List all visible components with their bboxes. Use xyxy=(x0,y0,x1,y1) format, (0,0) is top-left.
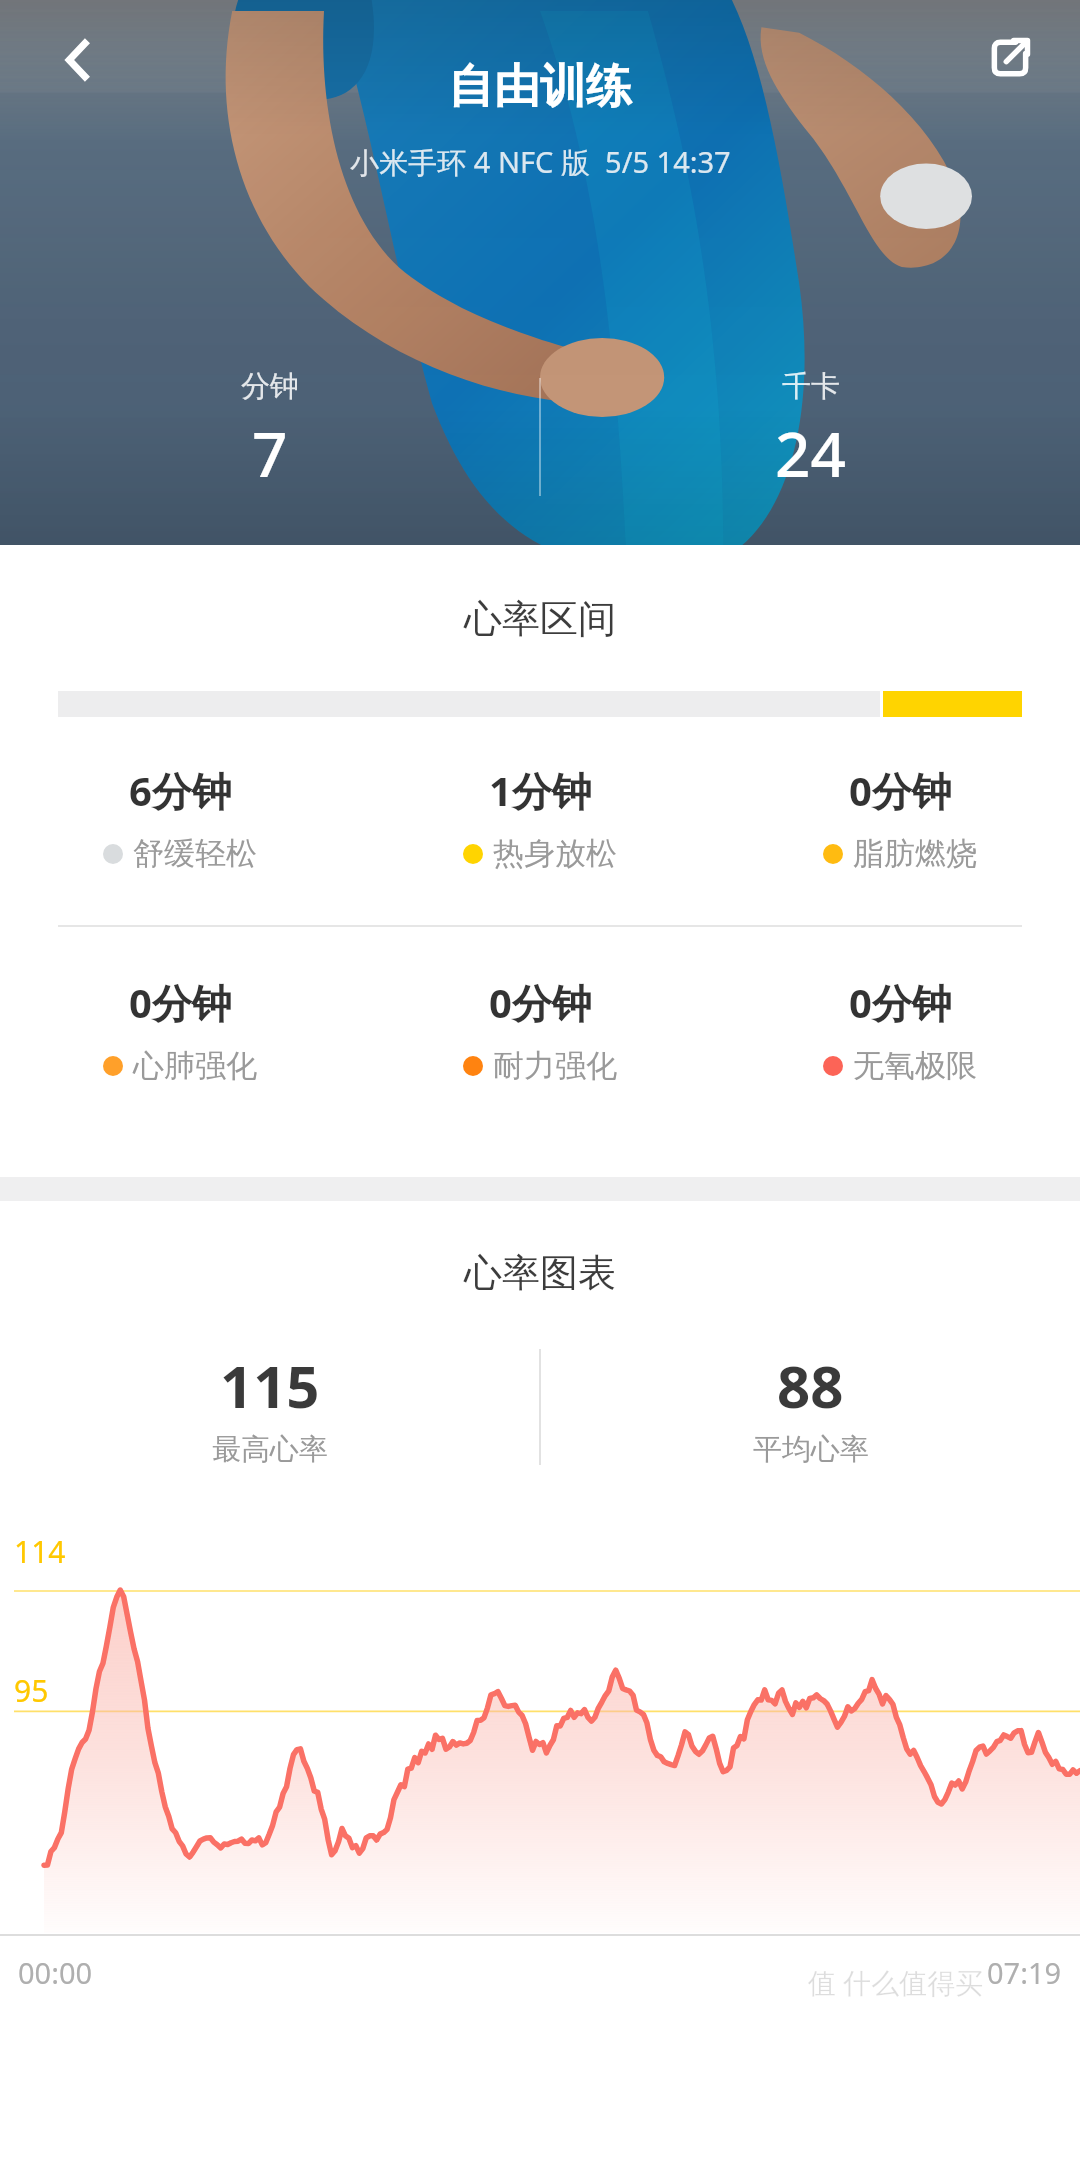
button[interactable]: 0分钟 xyxy=(720,763,1080,873)
staticText: 脂肪燃烧 xyxy=(853,834,977,873)
staticText: 舒缓轻松 xyxy=(133,834,257,873)
staticText: 0分钟 xyxy=(489,975,592,1030)
staticText: 心率图表 xyxy=(0,1249,1080,1297)
button[interactable]: 0分钟 xyxy=(720,975,1080,1085)
button[interactable]: Back xyxy=(30,12,126,108)
staticText: 114 xyxy=(14,1531,66,1572)
staticText: 88 xyxy=(777,1346,844,1425)
staticText: 7 xyxy=(252,411,288,495)
staticText: 心率区间 xyxy=(0,595,1080,643)
staticText: 1分钟 xyxy=(489,763,592,818)
staticText: 24 xyxy=(775,411,846,495)
button[interactable]: 0分钟 xyxy=(0,975,360,1085)
staticText: 平均心率 xyxy=(753,1431,869,1468)
button[interactable]: 88 xyxy=(541,1346,1080,1468)
staticText: 0分钟 xyxy=(129,975,232,1030)
staticText: 小米手环 4 NFC 版 5/5 14:37 xyxy=(350,142,731,182)
button[interactable]: 115 xyxy=(0,1346,539,1468)
staticText: 无氧极限 xyxy=(853,1046,977,1085)
button[interactable]: Share xyxy=(964,12,1056,104)
staticText: 千卡 xyxy=(782,368,840,405)
staticText: 07:19 xyxy=(987,1953,1062,1992)
staticText: 00:00 xyxy=(18,1953,93,1992)
staticText: 95 xyxy=(14,1670,49,1711)
staticText: 心肺强化 xyxy=(133,1046,257,1085)
staticText: 6分钟 xyxy=(129,763,232,818)
button[interactable]: 6分钟 xyxy=(0,763,360,873)
button[interactable]: 1分钟 xyxy=(360,763,720,873)
staticText: 0分钟 xyxy=(849,975,952,1030)
staticText: 耐力强化 xyxy=(493,1046,617,1085)
staticText: 热身放松 xyxy=(493,834,617,873)
staticText: 自由训练 xyxy=(448,58,632,116)
staticText: 值 什么值得买 xyxy=(808,1963,984,2001)
staticText: 115 xyxy=(220,1346,320,1425)
staticText: 最高心率 xyxy=(212,1431,328,1468)
staticText: 分钟 xyxy=(241,368,299,405)
button[interactable]: 0分钟 xyxy=(360,975,720,1085)
staticText: 0分钟 xyxy=(849,763,952,818)
